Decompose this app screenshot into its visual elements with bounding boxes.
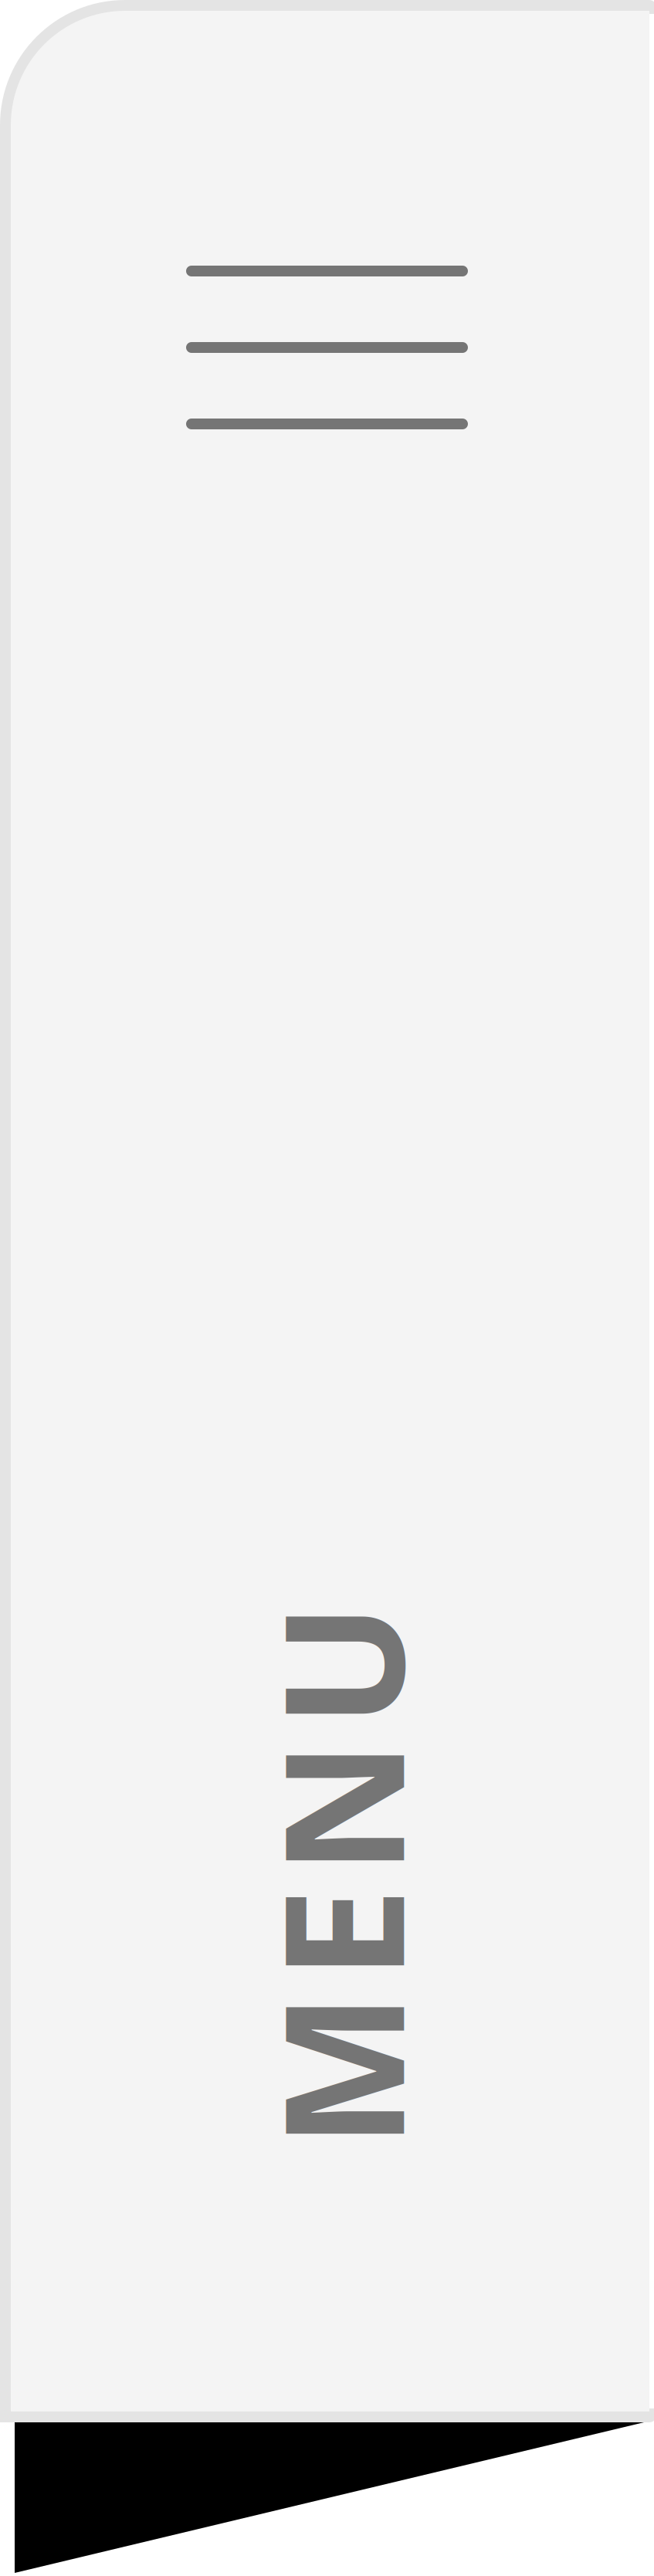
button[interactable]: Open menu (186, 266, 468, 429)
staticText: MENU (67, 1766, 613, 1986)
button[interactable]: MENU (279, 1616, 401, 2135)
